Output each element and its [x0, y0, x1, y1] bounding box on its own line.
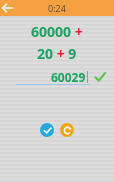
staticText: 60000 +	[31, 22, 83, 41]
other: Correct	[94, 71, 106, 83]
button[interactable]: 60029	[16, 69, 90, 85]
staticText: 0:24	[48, 2, 66, 14]
staticText: 20 + 9	[37, 44, 77, 63]
button[interactable]: Back	[0, 0, 16, 16]
button[interactable]: New question	[60, 123, 74, 137]
staticText: 60029	[51, 69, 86, 85]
button[interactable]: Submit answer	[40, 123, 54, 137]
